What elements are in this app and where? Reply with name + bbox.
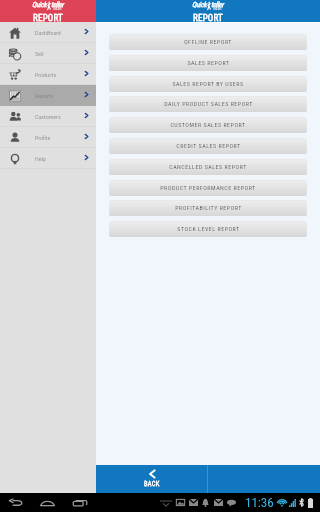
button[interactable]: DashBoard xyxy=(0,22,96,43)
button[interactable]: DAILY PRODUCT SALES REPORT xyxy=(109,96,307,112)
staticText: DashBoard xyxy=(35,29,61,36)
staticText: Sell xyxy=(35,50,44,57)
staticText: Products xyxy=(35,71,57,78)
staticText: DAILY PRODUCT SALES REPORT xyxy=(164,100,253,107)
staticText: ONLINE xyxy=(213,8,222,11)
staticText: CUSTOMER SALES REPORT xyxy=(170,121,246,128)
button[interactable]: Home xyxy=(32,493,63,512)
staticText: CREDIT SALES REPORT xyxy=(176,142,241,149)
staticText: Quick xyxy=(32,1,47,9)
button[interactable]: Back xyxy=(0,493,31,512)
staticText: Help xyxy=(35,155,46,162)
staticText: Reports xyxy=(35,92,54,99)
staticText: Quick xyxy=(192,1,207,9)
button[interactable]: CREDIT SALES REPORT xyxy=(109,138,307,154)
staticText: teller xyxy=(211,1,224,9)
button[interactable]: CANCELLED SALES REPORT xyxy=(109,159,307,175)
staticText: CANCELLED SALES REPORT xyxy=(169,163,247,170)
staticText: REPORT xyxy=(33,13,63,24)
button[interactable]: PRODUCT PERFORMANCE REPORT xyxy=(109,180,307,196)
button[interactable]: SALES REPORT BY USERS xyxy=(109,76,307,92)
staticText: SALES REPORT BY USERS xyxy=(172,80,244,87)
staticText: PROFITABILITY REPORT xyxy=(175,204,242,211)
button[interactable]: Customers xyxy=(0,106,96,127)
staticText: Customers xyxy=(35,113,61,120)
button[interactable]: Recent apps xyxy=(64,493,95,512)
staticText: 11:36 xyxy=(245,495,274,510)
staticText: teller xyxy=(51,1,64,9)
button[interactable]: Products xyxy=(0,64,96,85)
button[interactable]: Sell xyxy=(0,43,96,64)
staticText: SALES REPORT xyxy=(187,59,230,66)
button[interactable]: SALES REPORT xyxy=(109,55,307,71)
staticText: OFFLINE REPORT xyxy=(184,38,232,45)
button[interactable]: BACK xyxy=(96,465,207,493)
button[interactable]: CUSTOMER SALES REPORT xyxy=(109,117,307,133)
button[interactable]: Reports xyxy=(0,85,96,106)
button[interactable]: Profile xyxy=(0,127,96,148)
staticText: Profile xyxy=(35,134,51,141)
staticText: STOCK LEVEL REPORT xyxy=(177,225,240,232)
staticText: BACK xyxy=(144,480,160,488)
button[interactable]: Help xyxy=(0,148,96,169)
button[interactable]: STOCK LEVEL REPORT xyxy=(109,221,307,237)
button[interactable]: PROFITABILITY REPORT xyxy=(109,200,307,216)
button[interactable]: OFFLINE REPORT xyxy=(109,34,307,50)
staticText: REPORT xyxy=(193,13,223,24)
staticText: ONLINE xyxy=(53,8,62,11)
staticText: PRODUCT PERFORMANCE REPORT xyxy=(160,184,256,191)
